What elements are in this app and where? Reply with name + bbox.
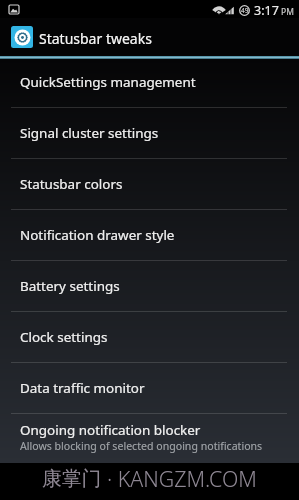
staticText: 49 xyxy=(241,6,249,15)
staticText: Ongoing notification blocker xyxy=(20,421,201,439)
button[interactable]: Data traffic monitor xyxy=(0,363,299,414)
button[interactable]: Notification drawer style xyxy=(0,210,299,261)
button[interactable]: Statusbar tweaks xyxy=(0,18,299,55)
button[interactable]: Signal cluster settings xyxy=(0,108,299,159)
button[interactable]: Battery settings xyxy=(0,261,299,312)
staticText: 康掌门 xyxy=(42,466,102,491)
staticText: PM xyxy=(281,6,294,18)
staticText: 3:17 xyxy=(254,2,279,19)
staticText: Statusbar colors xyxy=(20,175,123,193)
staticText: Clock settings xyxy=(20,328,108,346)
staticText: · KANGZM.COM xyxy=(107,464,257,493)
staticText: Allows blocking of selected ongoing noti… xyxy=(20,439,263,453)
staticText: Data traffic monitor xyxy=(20,379,145,397)
button[interactable]: QuickSettings management xyxy=(0,57,299,108)
staticText: Statusbar tweaks xyxy=(39,29,152,48)
button[interactable]: Statusbar colors xyxy=(0,159,299,210)
staticText: Battery settings xyxy=(20,277,120,295)
staticText: Notification drawer style xyxy=(20,226,175,244)
staticText: QuickSettings management xyxy=(20,73,196,91)
button[interactable]: Clock settings xyxy=(0,312,299,363)
button[interactable]: Ongoing notification blocker xyxy=(0,414,299,465)
staticText: Signal cluster settings xyxy=(20,124,159,142)
